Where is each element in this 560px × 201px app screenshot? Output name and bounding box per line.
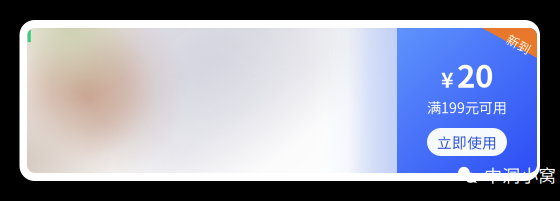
staticText: 中洞小窝 xyxy=(484,162,556,188)
button[interactable]: 立即使用 xyxy=(427,128,507,156)
staticText: 立即使用 xyxy=(437,131,497,153)
staticText: 满199元可用 xyxy=(427,97,507,117)
staticText: ¥ xyxy=(441,63,454,94)
staticText: 20 xyxy=(457,51,493,97)
staticText: 新到 xyxy=(506,35,532,53)
